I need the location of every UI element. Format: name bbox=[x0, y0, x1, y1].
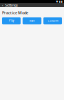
staticText: ▼ ▮ ▮ bbox=[56, 0, 62, 3]
staticText: Custom bbox=[48, 19, 58, 22]
staticText: Play bbox=[9, 19, 14, 22]
button[interactable]: Train bbox=[23, 17, 41, 24]
button[interactable]: Custom bbox=[43, 17, 62, 24]
staticText: Settings bbox=[5, 2, 18, 8]
button[interactable]: Back bbox=[2, 2, 3, 8]
button[interactable]: Play bbox=[2, 17, 21, 24]
staticText: ‹ bbox=[2, 2, 3, 8]
staticText: Train bbox=[29, 19, 35, 22]
staticText: Practice Mode bbox=[2, 10, 28, 15]
